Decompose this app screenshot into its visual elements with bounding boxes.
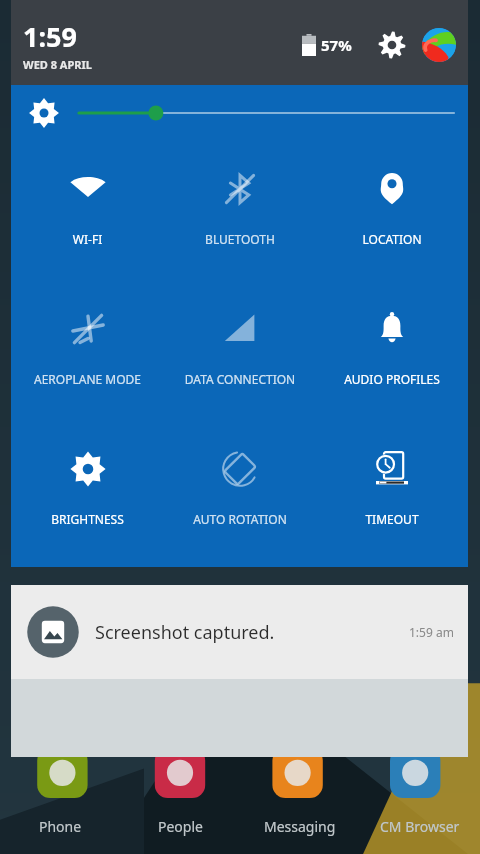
button[interactable]: Phone: [0, 817, 120, 836]
staticText: Screenshot captured.: [95, 620, 275, 645]
button[interactable]: AUDIO PROFILES: [316, 281, 468, 421]
button[interactable]: Battery 57 percent: [300, 34, 354, 56]
staticText: TIMEOUT: [316, 511, 468, 527]
button[interactable]: LOCATION: [316, 141, 468, 281]
staticText: DATA CONNECTION: [164, 371, 316, 387]
staticText: 1:59 am: [409, 624, 454, 640]
button[interactable]: WI-FI: [11, 141, 164, 281]
staticText: AUDIO PROFILES: [316, 371, 468, 387]
staticText: CM Browser: [380, 817, 460, 836]
button[interactable]: AUTO ROTATION: [164, 421, 316, 561]
button[interactable]: CM Browser: [360, 817, 480, 836]
button[interactable]: Screenshot captured.: [11, 585, 468, 679]
staticText: People: [158, 817, 203, 836]
staticText: 57%: [321, 35, 352, 55]
staticText: WED 8 APRIL: [23, 57, 92, 72]
staticText: 1:59: [23, 18, 77, 55]
staticText: BRIGHTNESS: [11, 511, 164, 527]
staticText: WI-FI: [11, 231, 164, 247]
staticText: Phone: [39, 817, 82, 836]
staticText: AEROPLANE MODE: [11, 371, 164, 387]
button[interactable]: Brightness slider: [11, 85, 468, 141]
staticText: Messaging: [264, 817, 336, 836]
button[interactable]: BRIGHTNESS: [11, 421, 164, 561]
button[interactable]: User profile: [418, 24, 460, 66]
staticText: BLUETOOTH: [164, 231, 316, 247]
button[interactable]: Settings: [370, 23, 414, 67]
button[interactable]: People: [120, 817, 240, 836]
staticText: LOCATION: [316, 231, 468, 247]
staticText: AUTO ROTATION: [164, 511, 316, 527]
button[interactable]: 1:59: [23, 18, 92, 72]
button[interactable]: DATA CONNECTION: [164, 281, 316, 421]
button[interactable]: TIMEOUT: [316, 421, 468, 561]
button[interactable]: BLUETOOTH: [164, 141, 316, 281]
button[interactable]: AEROPLANE MODE: [11, 281, 164, 421]
button[interactable]: Messaging: [240, 817, 360, 836]
